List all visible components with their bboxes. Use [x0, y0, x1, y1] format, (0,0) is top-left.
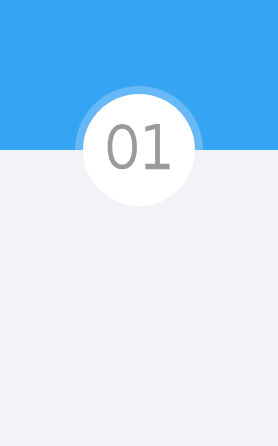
button[interactable]: Step 01: [83, 94, 195, 206]
